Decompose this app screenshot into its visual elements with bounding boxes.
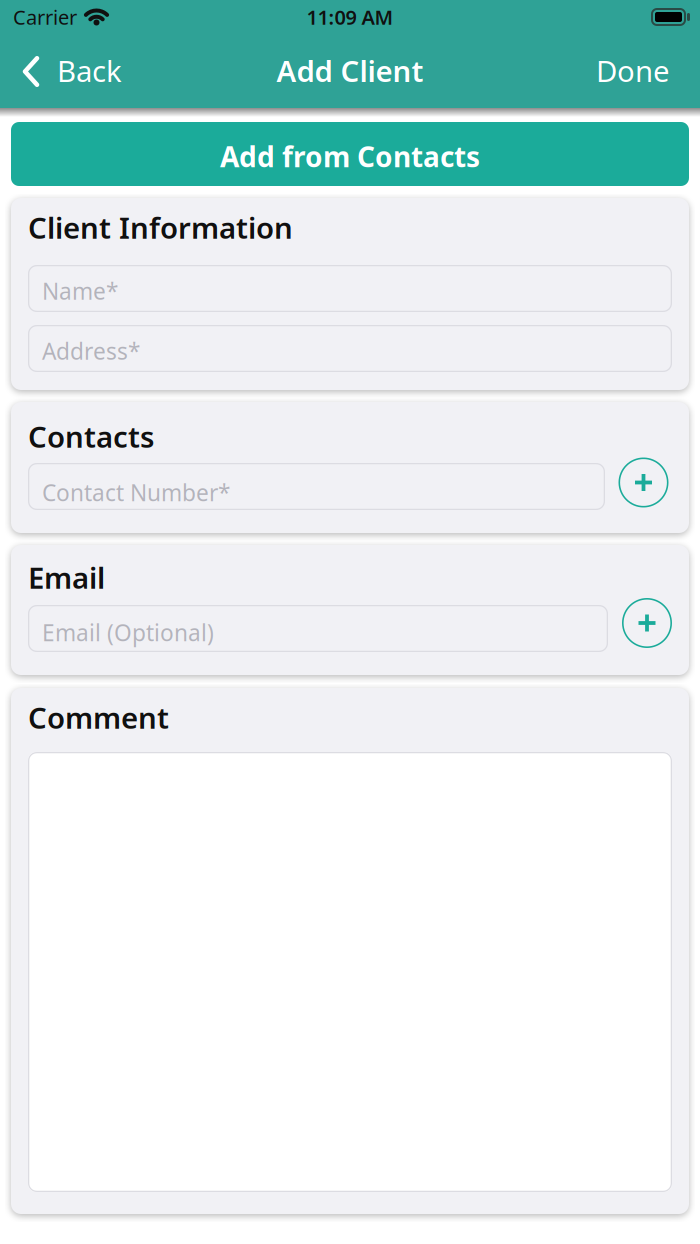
button[interactable] [28, 752, 672, 1192]
button[interactable] [622, 598, 672, 648]
staticText: Add from Contacts [220, 138, 480, 175]
button[interactable]: Email (Optional) [28, 605, 608, 652]
button[interactable]: Done [596, 51, 700, 90]
staticText: Comment [28, 698, 169, 737]
staticText: Email (Optional) [42, 617, 214, 647]
staticText: Add Client [276, 51, 423, 90]
button[interactable]: Contact Number* [28, 463, 605, 510]
staticText: 11:09 AM [306, 4, 393, 30]
staticText: Name* [42, 276, 118, 306]
staticText: Done [596, 51, 670, 90]
button[interactable]: Address* [28, 325, 672, 372]
staticText: Client Information [28, 208, 293, 247]
staticText: Carrier [13, 4, 77, 30]
button[interactable]: Back [0, 51, 122, 90]
button[interactable]: Add from Contacts [11, 122, 689, 186]
staticText: Contact Number* [42, 477, 230, 507]
staticText: Contacts [28, 417, 154, 456]
button[interactable] [618, 457, 668, 507]
button[interactable]: Name* [28, 265, 672, 312]
staticText: Email [28, 558, 105, 597]
staticText: Address* [42, 336, 140, 366]
staticText: Back [57, 51, 122, 90]
